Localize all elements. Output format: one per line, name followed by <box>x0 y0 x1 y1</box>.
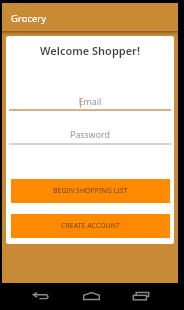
button[interactable]: Back <box>28 283 54 310</box>
button[interactable]: Home <box>78 283 104 310</box>
staticText: Welcome Shopper! <box>6 43 174 58</box>
staticText: Password <box>6 129 174 141</box>
staticText: CREATE ACCOUNT <box>61 221 120 231</box>
button[interactable]: CREATE ACCOUNT <box>11 214 170 238</box>
button[interactable]: BEGIN SHOPPING LIST <box>11 179 170 203</box>
button[interactable]: Recent apps <box>128 283 154 310</box>
staticText: BEGIN SHOPPING LIST <box>53 186 128 196</box>
staticText: Email <box>6 96 174 108</box>
button[interactable]: Grocery <box>2 3 178 31</box>
staticText: Grocery <box>11 12 47 25</box>
